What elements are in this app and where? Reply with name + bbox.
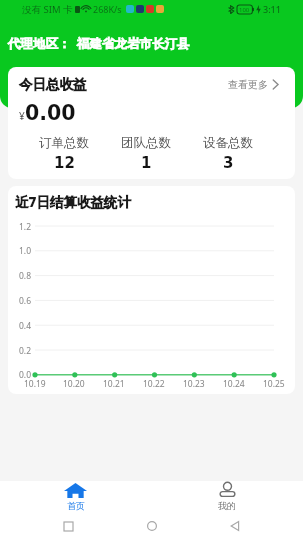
staticText: 10.24 [223,378,245,390]
staticText: 近7日结算收益统计 [15,193,131,211]
staticText: 10.19 [24,378,46,390]
staticText: 10.21 [103,378,125,390]
staticText: 100 [239,6,250,14]
staticText: 10.22 [143,378,165,390]
staticText: 我的 [218,500,236,511]
button[interactable]: 我的 [151,481,303,512]
staticText: 0.6 [8,295,31,307]
staticText: 12 [54,154,75,171]
staticText: 10.20 [63,378,85,390]
staticText: 0.00 [25,101,76,125]
staticText: 1.0 [8,245,31,257]
staticText: 10.23 [183,378,205,390]
staticText: 1.2 [8,221,31,233]
staticText: 代理地区： 福建省龙岩市长汀县 [8,35,190,52]
staticText: 今日总收益 [19,76,87,93]
staticText: 268K/s [93,3,122,15]
button[interactable]: 订单总数 [23,135,105,171]
button[interactable]: 首页 [0,481,151,512]
button[interactable]: 团队总数 [105,135,187,171]
staticText: 没有 SIM 卡 [22,3,73,16]
staticText: ¥ [19,109,25,123]
button[interactable]: Recent apps [53,512,83,540]
staticText: 1 [141,154,152,171]
staticText: 3 [223,154,234,171]
button[interactable]: 查看更多 [228,76,279,93]
button[interactable]: 设备总数 [187,135,269,171]
staticText: 设备总数 [203,135,253,151]
staticText: 3:11 [263,3,281,15]
staticText: 首页 [67,500,85,511]
staticText: 0.4 [8,320,31,332]
staticText: 10.25 [263,378,285,390]
staticText: 0.0 [8,369,31,381]
staticText: 查看更多 [228,78,268,91]
staticText: 团队总数 [121,135,171,151]
staticText: 0.2 [8,345,31,357]
button[interactable]: Home [137,512,167,540]
button[interactable]: Back [220,512,250,540]
staticText: 0.8 [8,270,31,282]
staticText: 订单总数 [39,135,89,151]
